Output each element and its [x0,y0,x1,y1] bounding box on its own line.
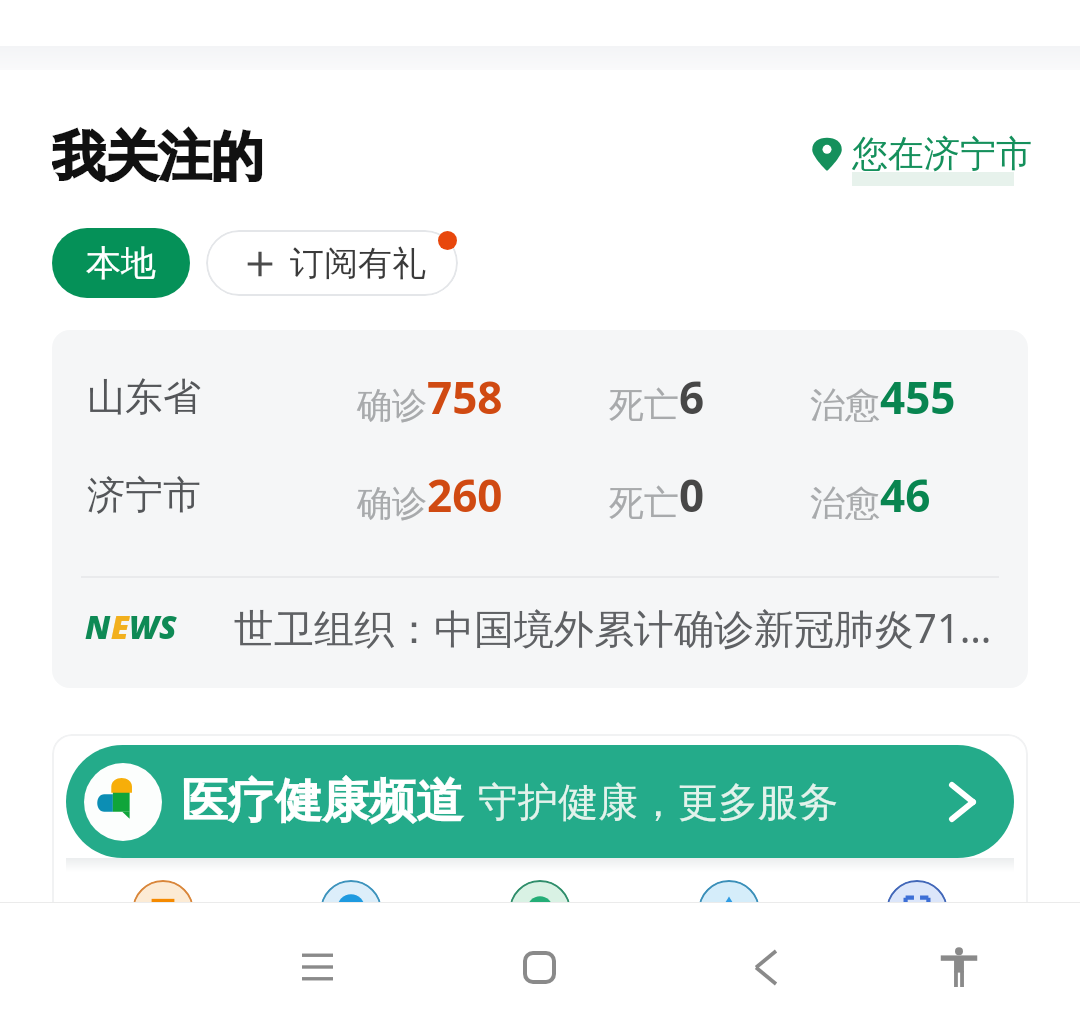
staticText: 守护健康，更多服务 [478,777,838,827]
staticText: 济宁市 [87,471,201,519]
staticText: 死亡 [609,383,679,427]
staticText: 医疗健康频道 [181,772,463,831]
button[interactable]: 山东省 [52,330,1028,688]
staticText: 6 [679,367,705,427]
staticText: 46 [880,465,931,525]
button[interactable]: Quick action [132,880,194,942]
button[interactable]: Menu [262,902,372,1032]
staticText: 我关注的 [52,124,264,182]
staticText: 治愈 [810,481,880,525]
staticText: N [85,605,111,649]
staticText: 确诊 [357,383,427,427]
button[interactable]: Quick action [886,880,948,942]
staticText: S [159,605,177,649]
staticText: 确诊 [357,481,427,525]
button[interactable]: 您在济宁市 [809,131,1032,176]
button[interactable]: 本地 [52,228,190,298]
button[interactable]: Quick action [320,880,382,942]
staticText: 455 [880,367,956,427]
staticText: 山东省 [87,373,201,421]
button[interactable]: Back [711,902,821,1032]
button[interactable]: Quick action [509,880,571,942]
button[interactable]: 济宁市 [52,426,1028,564]
staticText: 死亡 [609,481,679,525]
button[interactable]: Quick action [698,880,760,942]
staticText: 0 [679,465,705,525]
button[interactable]: 山东省 [52,330,1028,466]
staticText: 订阅有礼 [290,242,426,285]
staticText: 世卫组织：中国境外累计确诊新冠肺炎71… [234,600,992,655]
button[interactable]: 医疗健康频道 [66,745,1014,858]
staticText: 260 [427,465,503,525]
button[interactable]: Accessibility [904,902,1014,1032]
staticText: 您在济宁市 [852,131,1032,176]
staticText: 758 [427,367,503,427]
staticText: 治愈 [810,383,880,427]
staticText: 本地 [86,241,156,285]
staticText: E [111,605,129,649]
button[interactable]: N [52,582,1028,672]
staticText: W [129,605,159,649]
button[interactable]: 订阅有礼 [206,230,458,296]
button[interactable]: Home [484,902,594,1032]
